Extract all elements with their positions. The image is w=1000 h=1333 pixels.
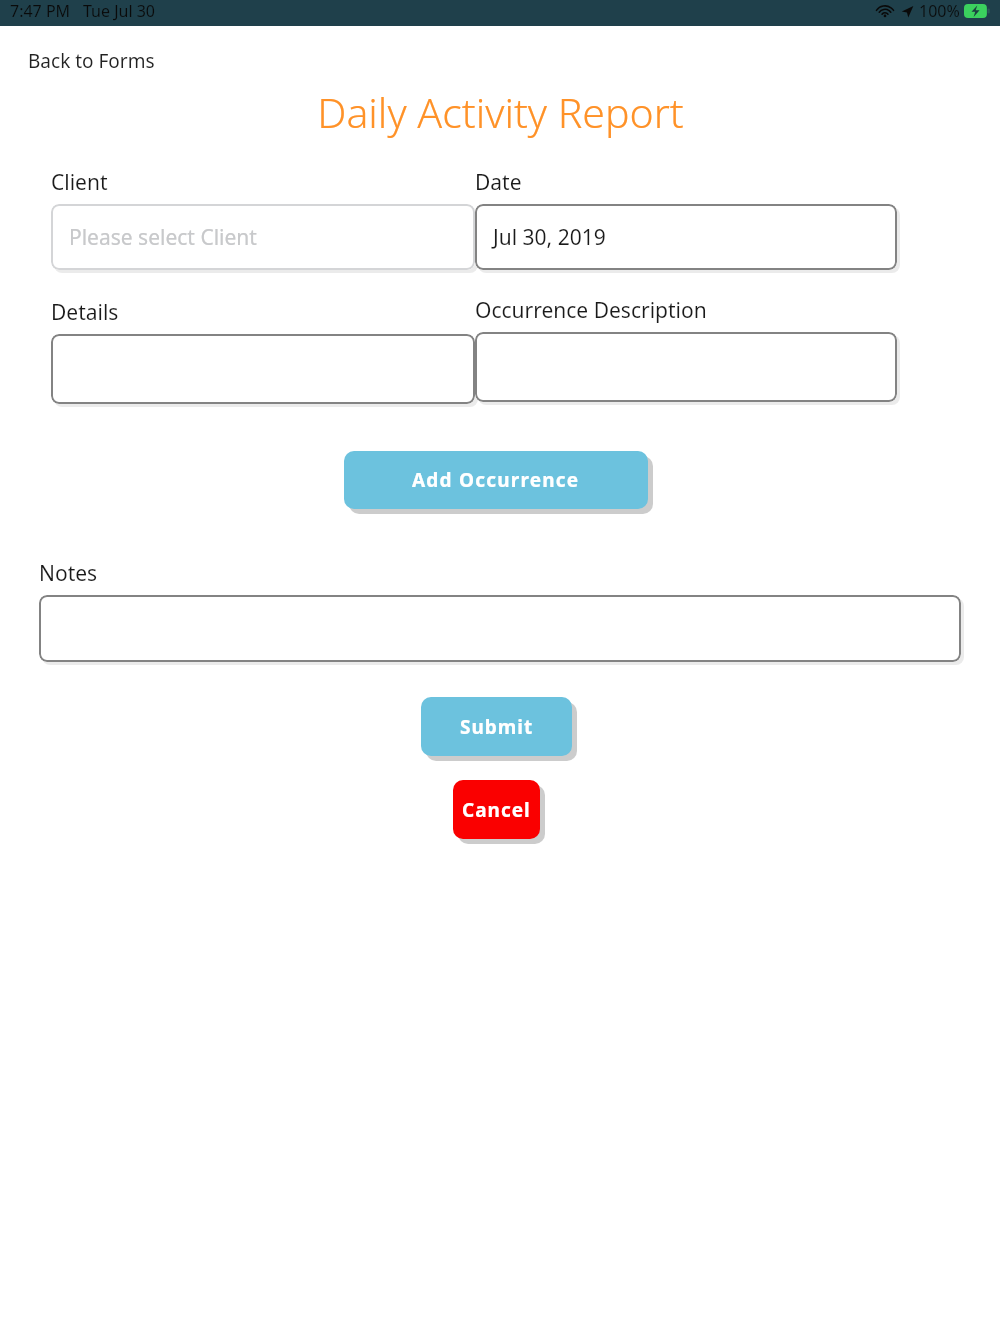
staticText: 7:47 PM (10, 0, 71, 22)
button[interactable] (51, 334, 475, 404)
staticText: Notes (39, 559, 98, 588)
staticText: 100% (919, 0, 960, 22)
staticText: Date (475, 168, 522, 197)
button[interactable] (39, 595, 961, 662)
staticText: Cancel (462, 797, 531, 823)
button[interactable] (475, 332, 897, 402)
staticText: Tue Jul 30 (83, 0, 156, 22)
staticText: Back to Forms (28, 48, 155, 74)
staticText: Add Occurrence (412, 467, 580, 493)
button[interactable]: Submit (421, 697, 572, 756)
staticText: Daily Activity Report (317, 84, 684, 140)
staticText: Details (51, 298, 119, 327)
button[interactable]: Please select Client (51, 204, 475, 270)
button[interactable]: Add Occurrence (344, 451, 648, 509)
staticText: Jul 30, 2019 (493, 223, 606, 252)
staticText: Client (51, 168, 108, 197)
staticText: Occurrence Description (475, 296, 707, 325)
staticText: Please select Client (69, 223, 257, 252)
button[interactable]: Back to Forms (26, 46, 157, 76)
button[interactable]: Jul 30, 2019 (475, 204, 897, 270)
staticText: Submit (460, 714, 534, 740)
button[interactable]: Cancel (453, 780, 540, 839)
